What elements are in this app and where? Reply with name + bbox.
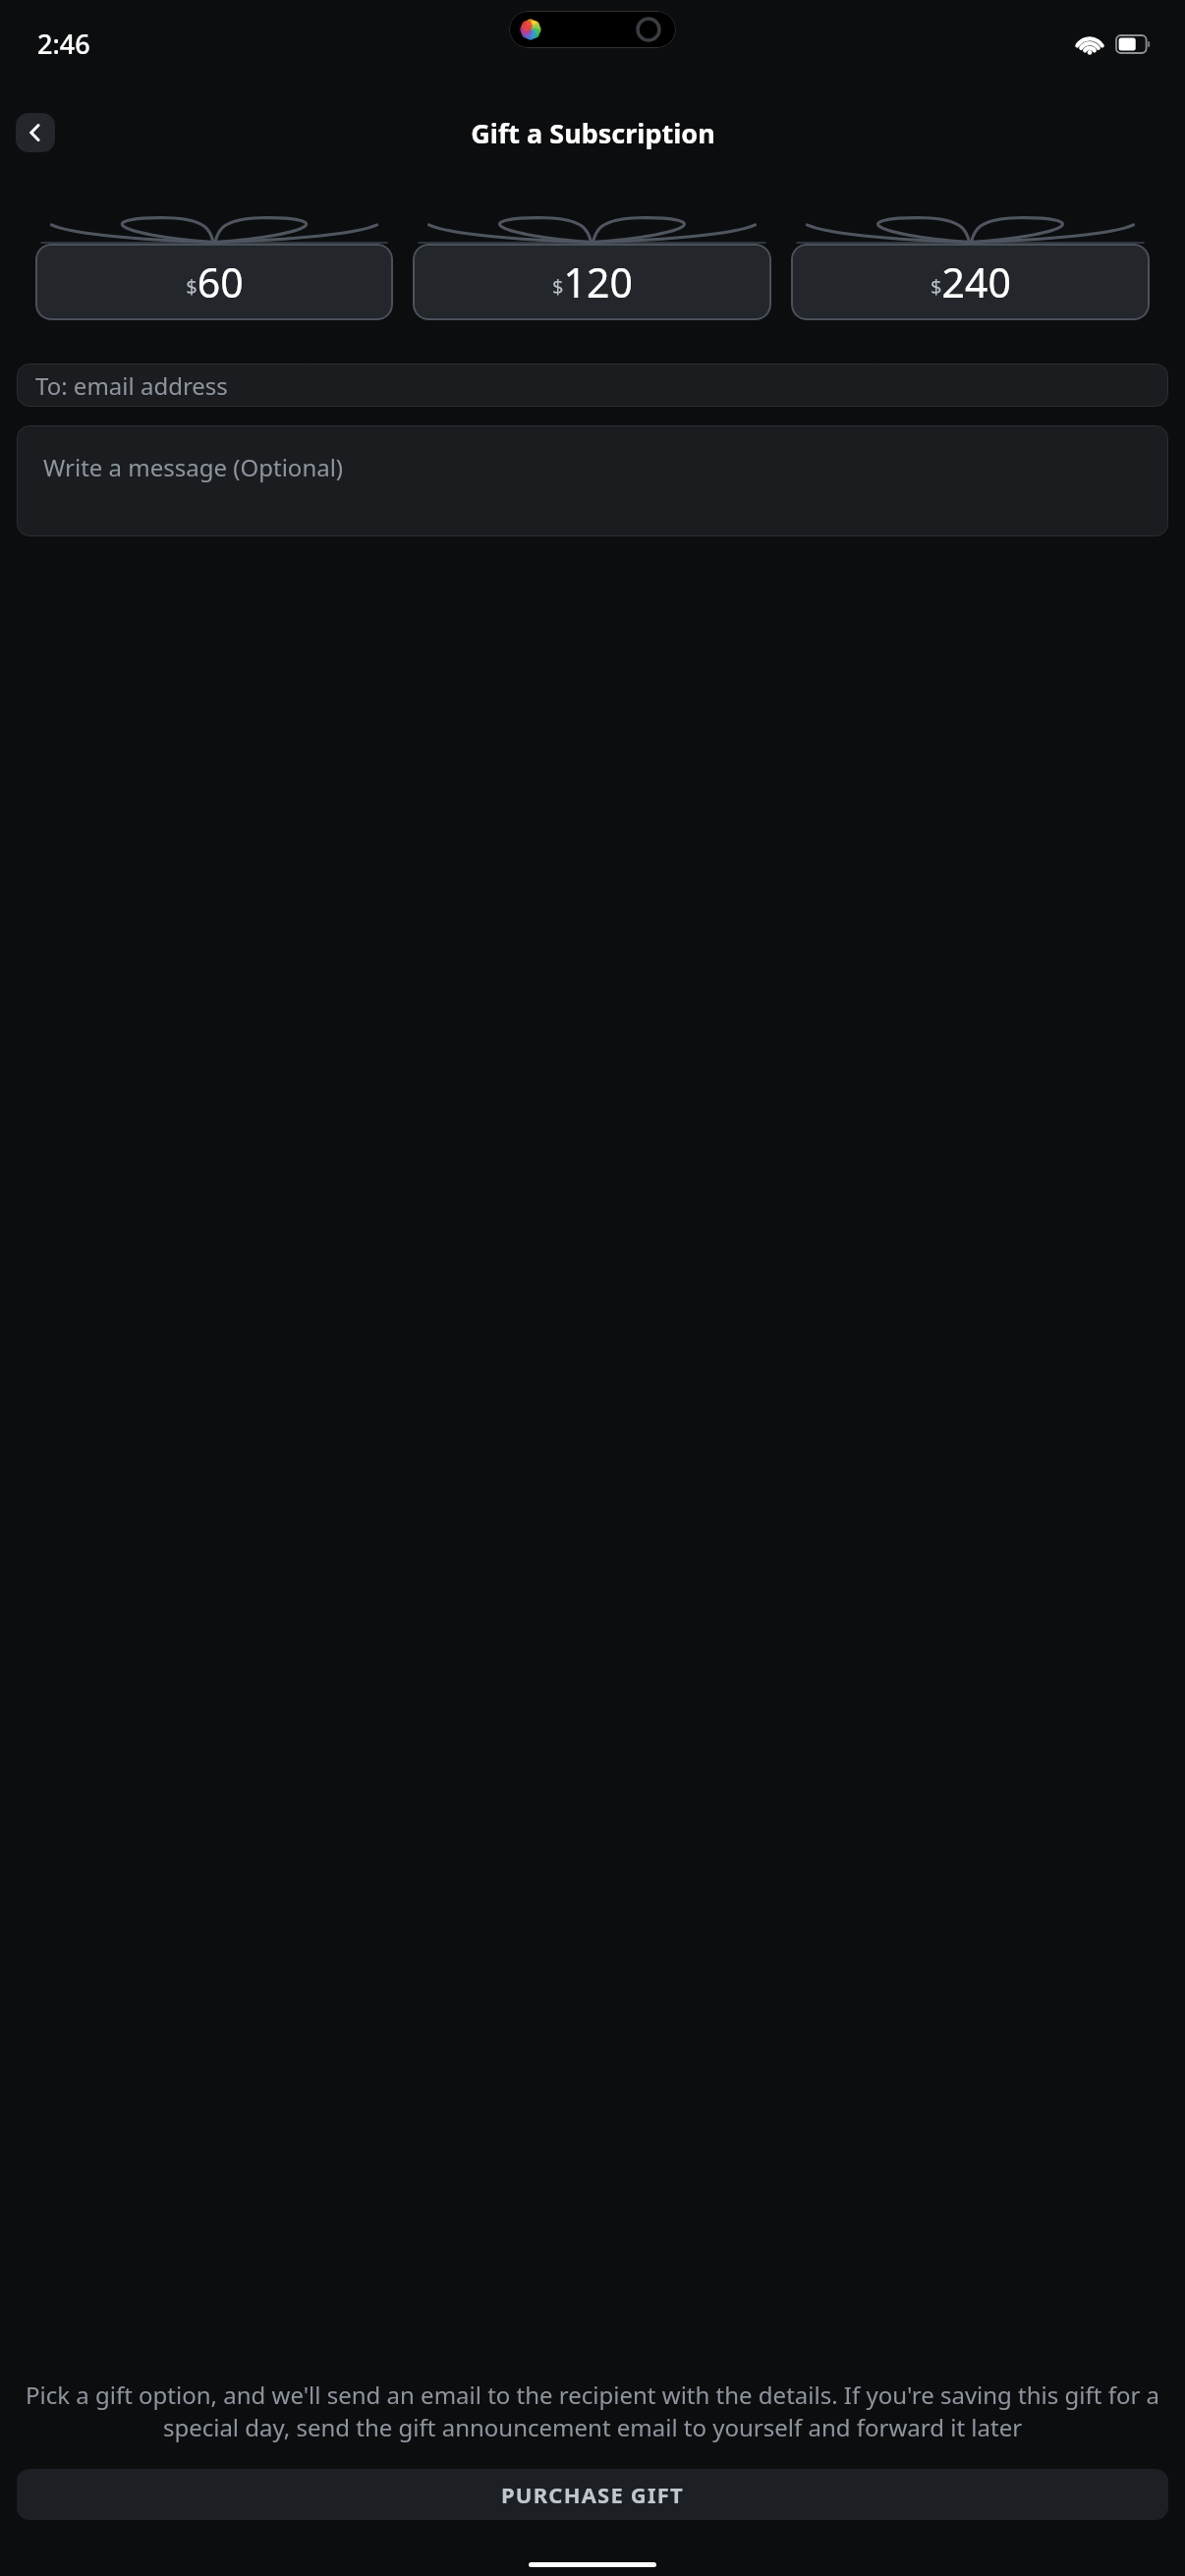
button[interactable]: $240 xyxy=(791,216,1150,320)
staticText: Pick a gift option, and we'll send an em… xyxy=(20,2379,1165,2443)
staticText: Gift a Subscription xyxy=(471,115,715,151)
staticText: 2:46 xyxy=(37,26,90,62)
button[interactable]: Back xyxy=(16,113,55,152)
staticText: To: email address xyxy=(35,369,228,402)
staticText: Write a message (Optional) xyxy=(43,451,344,483)
button[interactable]: PURCHASE GIFT xyxy=(17,2469,1168,2520)
button[interactable]: To: email address xyxy=(17,364,1168,407)
staticText: $240 xyxy=(931,254,1011,309)
button[interactable]: $60 xyxy=(35,216,393,320)
staticText: PURCHASE GIFT xyxy=(501,2480,684,2509)
staticText: $60 xyxy=(186,254,244,309)
button[interactable]: $120 xyxy=(413,216,771,320)
staticText: $120 xyxy=(552,254,633,309)
button[interactable]: Write a message (Optional) xyxy=(17,425,1168,536)
